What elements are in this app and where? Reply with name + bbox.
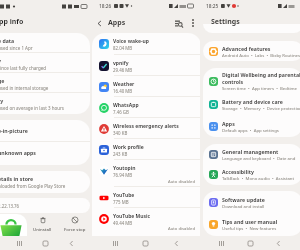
button[interactable]: App icon xyxy=(0,214,27,246)
button[interactable]: Digital Wellbeing and parental controls xyxy=(203,68,300,94)
staticText: 29.46 MB xyxy=(113,67,133,73)
staticText: Apps xyxy=(222,120,235,127)
button[interactable]: Weather xyxy=(92,76,201,97)
button[interactable]: Recents xyxy=(109,237,122,250)
staticText: Uninstall xyxy=(33,226,52,232)
staticText: YouTube xyxy=(113,192,135,199)
staticText: e-in-picture xyxy=(0,127,28,134)
button[interactable]: Software update xyxy=(203,191,300,213)
staticText: Tips and user manual xyxy=(222,218,278,225)
staticText: etails in store xyxy=(0,175,34,182)
staticText: Work profile xyxy=(113,144,144,151)
button[interactable]: Search apps xyxy=(171,16,186,31)
staticText: Default apps • App settings xyxy=(222,127,279,133)
button[interactable]: Battery and device care xyxy=(203,94,300,115)
button[interactable]: More options xyxy=(186,16,200,30)
staticText: used in internal storage xyxy=(0,85,49,91)
button[interactable]: Recents xyxy=(215,237,228,250)
staticText: 7.46 GB xyxy=(113,109,129,115)
button[interactable]: y xyxy=(0,53,90,73)
staticText: Weather xyxy=(113,81,135,88)
staticText: used since 1 Apr xyxy=(0,45,33,51)
staticText: YouTube Music xyxy=(113,213,151,220)
staticText: Storage • Memory • Device protection xyxy=(222,105,300,111)
staticText: 82.04 MB xyxy=(113,45,133,51)
staticText: 49.44 MB xyxy=(113,220,133,226)
staticText: Auto disabled xyxy=(168,226,196,232)
staticText: y xyxy=(0,57,1,64)
button[interactable]: unknown apps xyxy=(0,142,90,165)
button[interactable]: e-in-picture xyxy=(0,120,90,142)
staticText: e data xyxy=(0,37,15,44)
staticText: Advanced features xyxy=(222,45,271,52)
staticText: Digital Wellbeing and parental controls xyxy=(222,71,300,85)
button[interactable]: etails in store xyxy=(0,171,90,193)
staticText: nloaded from Google Play Store xyxy=(0,183,66,189)
staticText: WhatsApp xyxy=(113,102,139,109)
staticText: Language and keyboard • Date and time xyxy=(222,155,300,161)
staticText: Screen time • App timers • Bedtime mode xyxy=(222,85,300,91)
staticText: TalkBack • Mono audio • Assistant menu xyxy=(222,175,300,181)
staticText: 2.22.13.76 xyxy=(0,203,20,209)
staticText: Force stop xyxy=(64,226,86,232)
staticText: ge xyxy=(0,77,5,84)
staticText: unknown apps xyxy=(0,149,36,156)
button[interactable]: Work profile xyxy=(92,139,201,160)
button[interactable]: YouTube Music xyxy=(92,208,201,234)
button[interactable]: Apps xyxy=(203,115,300,137)
button[interactable]: Youtopin xyxy=(92,160,201,187)
button[interactable]: Home xyxy=(244,237,257,250)
staticText: used on average in last 3 hours xyxy=(0,105,64,111)
staticText: 16.40 MB xyxy=(113,88,133,94)
button[interactable]: Force stop xyxy=(59,216,90,232)
staticText: Youtopin xyxy=(113,165,136,172)
button[interactable]: Back xyxy=(170,237,183,250)
button[interactable]: vpnify xyxy=(92,55,201,76)
button[interactable]: ge xyxy=(0,73,90,93)
staticText: 340 KB xyxy=(113,130,128,136)
staticText: General management xyxy=(222,148,279,155)
staticText: 76.94 MB xyxy=(113,172,133,178)
staticText: 243 KB xyxy=(113,151,128,157)
staticText: Download and install xyxy=(222,203,265,209)
staticText: ry xyxy=(0,97,4,104)
staticText: since last fully charged xyxy=(0,65,47,71)
staticText: Software update xyxy=(222,196,265,203)
staticText: 775 MB xyxy=(113,199,129,205)
button[interactable]: YouTube xyxy=(92,187,201,208)
staticText: 18:25 xyxy=(206,3,219,10)
button[interactable]: ry xyxy=(0,93,90,114)
staticText: 18:26 xyxy=(99,3,112,10)
button[interactable]: Back xyxy=(272,237,285,250)
staticText: Android Auto • Labs • Bixby Routines xyxy=(222,52,300,58)
staticText: Voice wake-up xyxy=(113,38,150,45)
staticText: Apps xyxy=(108,18,126,28)
button[interactable]: Tips and user manual xyxy=(203,213,300,236)
staticText: pp info xyxy=(0,17,24,27)
button[interactable]: Accessibility xyxy=(203,164,300,185)
button[interactable]: Uninstall xyxy=(27,216,58,232)
staticText: Battery and device care xyxy=(222,98,283,105)
button[interactable]: WhatsApp xyxy=(92,97,201,118)
staticText: vpnify xyxy=(113,60,129,67)
staticText: Useful tips • New features xyxy=(222,225,277,231)
button[interactable]: Back xyxy=(65,237,78,250)
button[interactable]: e data xyxy=(0,33,90,53)
button[interactable]: Recents xyxy=(13,237,26,250)
staticText: Wireless emergency alerts xyxy=(113,123,179,130)
button[interactable]: General management xyxy=(203,144,300,164)
staticText: Accessibility xyxy=(222,168,254,175)
button[interactable]: Voice wake-up xyxy=(92,33,201,55)
button[interactable]: Wireless emergency alerts xyxy=(92,118,201,139)
staticText: Auto disabled xyxy=(168,179,196,185)
button[interactable]: Home xyxy=(39,237,52,250)
button[interactable]: Back xyxy=(91,15,108,32)
button[interactable]: Home xyxy=(139,237,152,250)
button[interactable]: Advanced features xyxy=(203,41,300,61)
staticText: Settings xyxy=(211,17,240,27)
